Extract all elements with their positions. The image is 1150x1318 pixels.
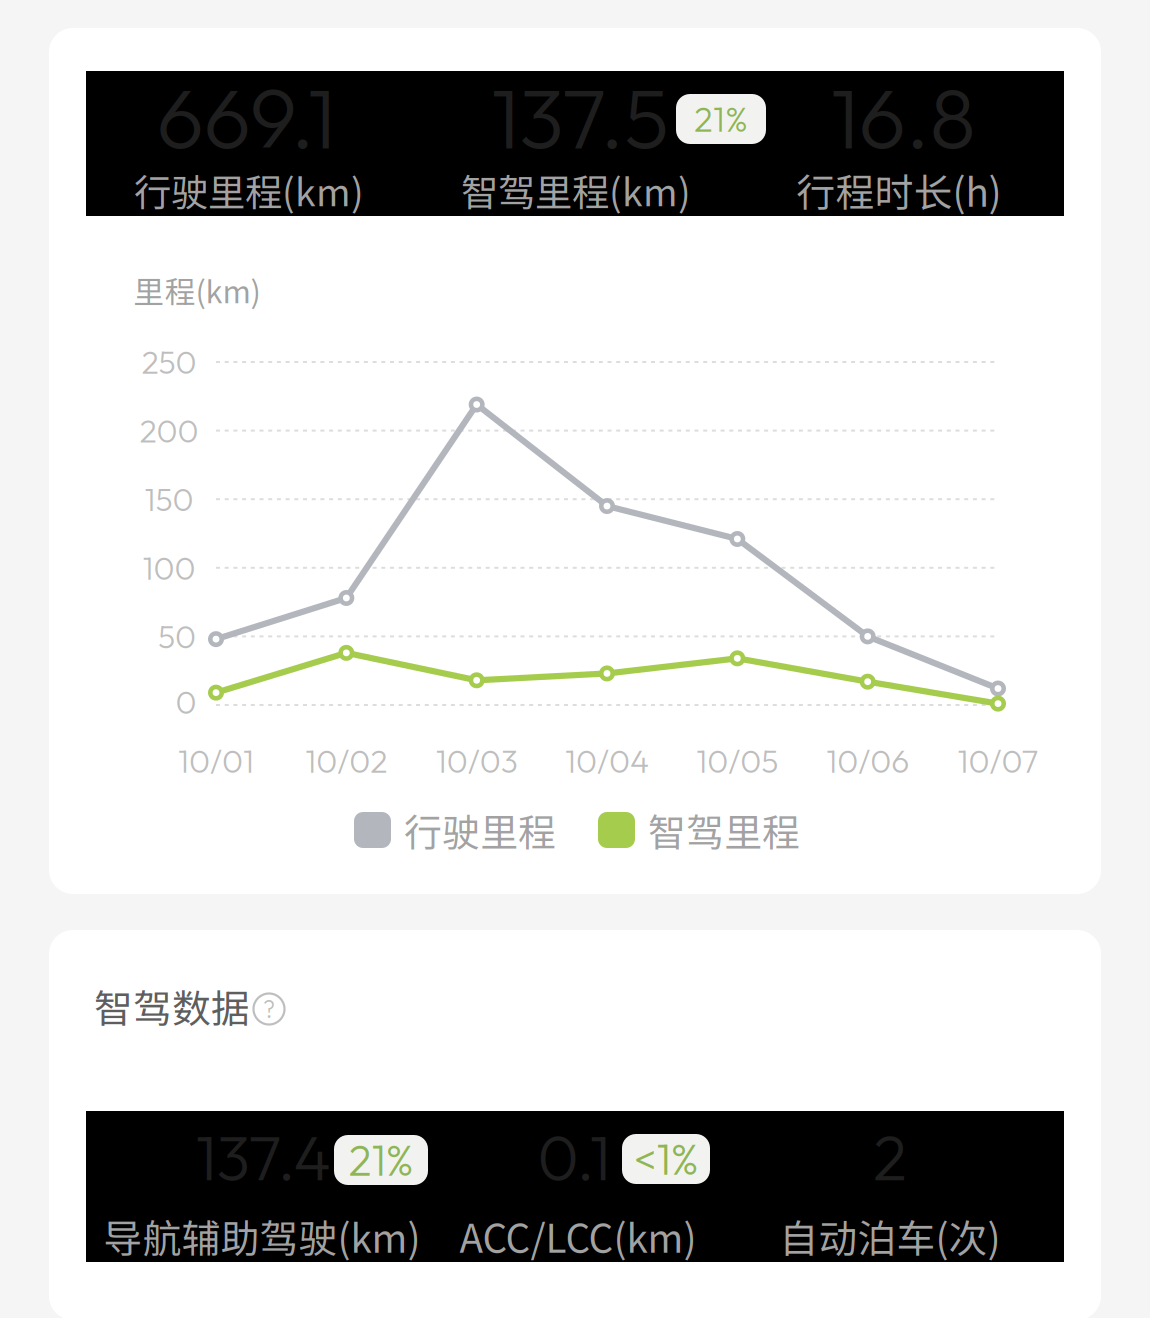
staticText: 10/07 <box>957 741 1038 781</box>
staticText: ? <box>263 994 275 1024</box>
staticText: 200 <box>139 410 198 451</box>
staticText: 10/04 <box>565 741 649 781</box>
staticText: 10/02 <box>305 741 387 781</box>
button[interactable]: 0.1 <box>440 1111 752 1262</box>
staticText: 0 <box>175 682 196 722</box>
staticText: 自动泊车(次) <box>779 1208 1000 1264</box>
staticText: 10/03 <box>436 741 518 781</box>
staticText: 10/05 <box>696 741 778 781</box>
staticText: 导航辅助驾驶(km) <box>103 1208 420 1264</box>
button[interactable]: 16.8 <box>738 71 1064 216</box>
staticText: 智驾里程 <box>648 803 800 857</box>
staticText: 10/01 <box>178 741 254 781</box>
staticText: 0.1 <box>537 1117 610 1196</box>
staticText: 2 <box>873 1117 907 1196</box>
button[interactable]: 137.4 <box>86 1111 440 1262</box>
staticText: 行驶里程(km) <box>134 163 364 217</box>
staticText: 里程(km) <box>133 268 260 312</box>
staticText: ACC/LCC(km) <box>459 1208 696 1264</box>
staticText: 行程时长(h) <box>796 162 1001 218</box>
staticText: 16.8 <box>830 64 975 170</box>
staticText: 100 <box>142 548 195 588</box>
staticText: <1% <box>633 1132 698 1186</box>
staticText: 智驾里程(km) <box>461 163 691 217</box>
staticText: 50 <box>158 616 196 656</box>
button[interactable]: 137.5 <box>412 71 738 216</box>
button[interactable]: 关于智驾数据 <box>253 993 284 1024</box>
staticText: 250 <box>141 342 196 382</box>
button[interactable]: 2 <box>752 1111 1064 1262</box>
staticText: 行驶里程 <box>404 803 556 857</box>
staticText: 智驾数据 <box>94 978 250 1034</box>
staticText: 137.5 <box>491 64 669 170</box>
staticText: 150 <box>144 479 193 519</box>
staticText: 10/06 <box>826 741 909 781</box>
staticText: 137.4 <box>195 1117 330 1196</box>
button[interactable]: 669.1 <box>86 71 412 216</box>
button[interactable]: 智驾里程 <box>598 803 800 857</box>
staticText: 21% <box>348 1133 413 1187</box>
button[interactable]: 行驶里程 <box>354 803 556 857</box>
staticText: 21% <box>694 97 748 141</box>
staticText: 669.1 <box>156 64 335 170</box>
